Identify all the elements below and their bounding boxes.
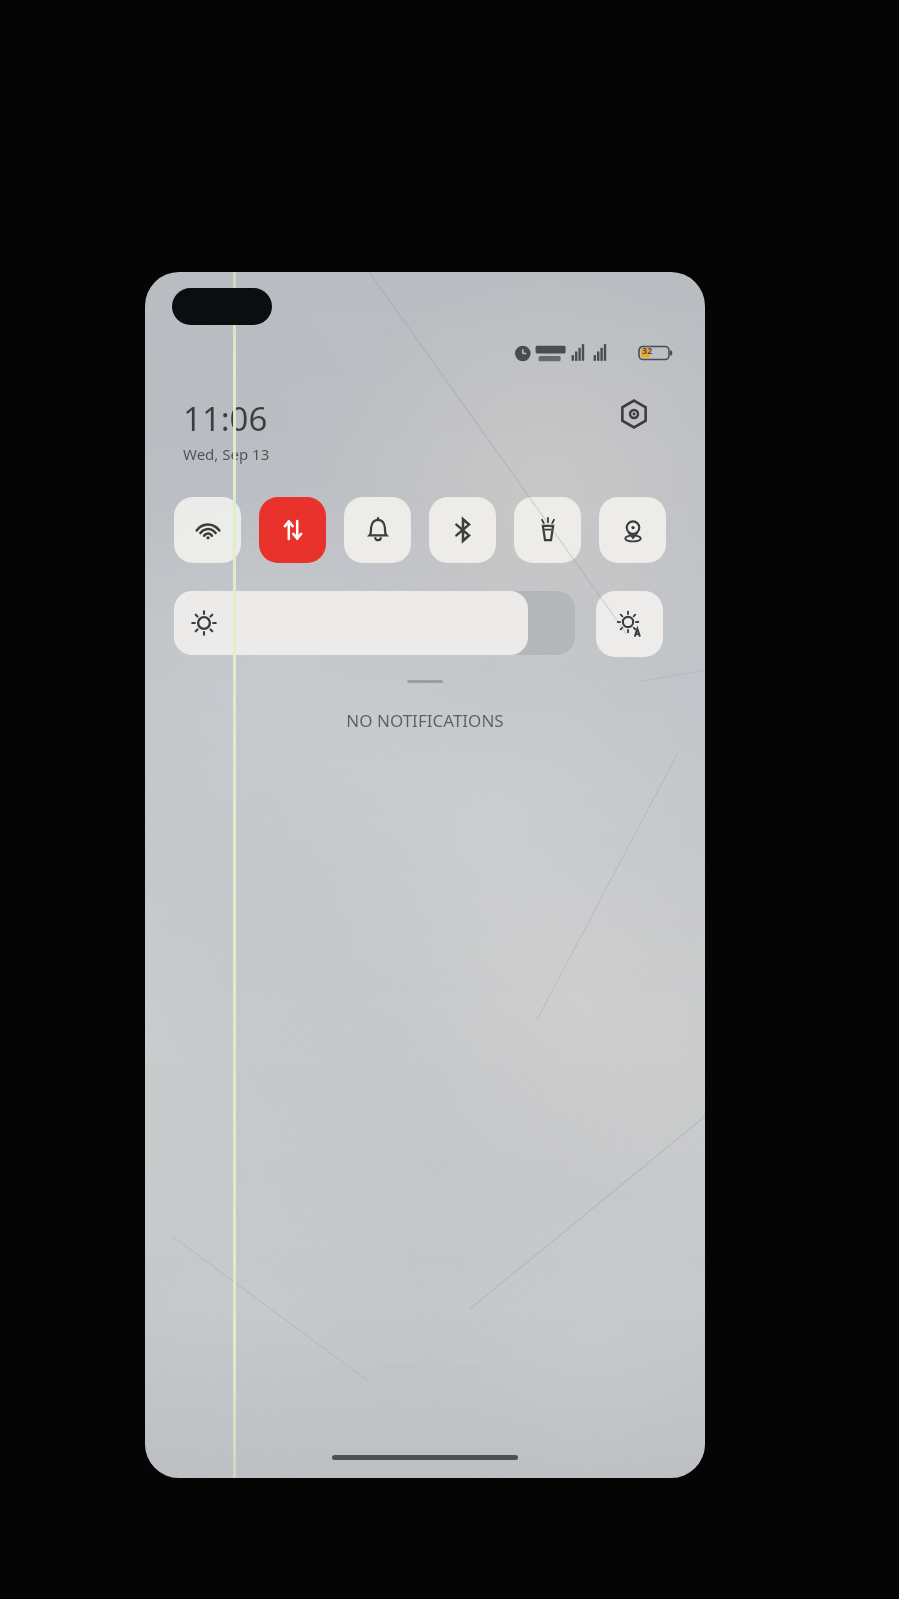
button[interactable]: Flashlight <box>514 497 581 563</box>
staticText: 32 <box>642 344 653 356</box>
button[interactable]: Wi-Fi <box>174 497 241 563</box>
button[interactable]: Location <box>599 497 666 563</box>
button[interactable]: Bluetooth <box>429 497 496 563</box>
button[interactable]: Brightness <box>174 591 575 655</box>
staticText: 11:06 <box>183 396 268 441</box>
staticText: Wed, Sep 13 <box>183 444 270 464</box>
staticText: NO NOTIFICATIONS <box>346 709 504 732</box>
button[interactable]: Settings <box>610 390 658 438</box>
button[interactable]: Home <box>332 1455 518 1460</box>
button[interactable]: Ring mode <box>344 497 411 563</box>
button[interactable]: Auto brightness <box>596 591 663 657</box>
button[interactable]: Mobile data <box>259 497 326 563</box>
